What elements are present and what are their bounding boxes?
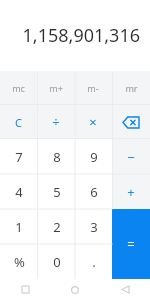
button[interactable]: mr	[112, 71, 150, 105]
button[interactable]: ÷	[37, 105, 74, 139]
button[interactable]: Back	[100, 279, 150, 300]
staticText: −	[127, 148, 135, 166]
staticText: 8	[53, 148, 61, 166]
button[interactable]: 9	[75, 139, 112, 174]
button[interactable]: Backspace	[112, 105, 150, 139]
staticText: .	[92, 253, 96, 271]
staticText: 0	[53, 253, 61, 271]
staticText: 4	[15, 183, 23, 201]
button[interactable]: 2	[38, 209, 75, 244]
button[interactable]: Equals	[112, 209, 150, 279]
staticText: ×	[89, 113, 97, 131]
button[interactable]: −	[112, 139, 150, 174]
button[interactable]: m+	[37, 71, 74, 105]
button[interactable]: 7	[0, 139, 38, 174]
button[interactable]: .	[75, 244, 112, 279]
staticText: +	[127, 183, 135, 201]
staticText: mr	[125, 82, 138, 94]
staticText: 5	[53, 183, 61, 201]
button[interactable]: 6	[75, 174, 112, 209]
button[interactable]: %	[0, 244, 38, 279]
button[interactable]: 3	[75, 209, 112, 244]
button[interactable]: Home	[50, 279, 100, 300]
staticText: 7	[15, 148, 23, 166]
staticText: 9	[90, 148, 98, 166]
staticText: 1	[15, 218, 23, 236]
staticText: 2	[53, 218, 61, 236]
staticText: 1,158,901,316	[22, 23, 140, 48]
staticText: ÷	[52, 113, 60, 131]
button[interactable]: 5	[38, 174, 75, 209]
staticText: 3	[90, 218, 98, 236]
button[interactable]: 4	[0, 174, 38, 209]
staticText: m+	[49, 82, 63, 94]
button[interactable]: 0	[38, 244, 75, 279]
button[interactable]: 1	[0, 209, 38, 244]
staticText: %	[14, 253, 25, 271]
staticText: m-	[87, 82, 99, 94]
button[interactable]: +	[112, 174, 150, 209]
staticText: mc	[12, 82, 25, 94]
button[interactable]: Recents	[0, 279, 50, 300]
button[interactable]: mc	[0, 71, 37, 105]
staticText: C	[15, 115, 22, 130]
button[interactable]: m-	[74, 71, 112, 105]
button[interactable]: ×	[74, 105, 112, 139]
button[interactable]: 8	[38, 139, 75, 174]
button[interactable]: C	[0, 105, 37, 139]
staticText: 6	[90, 183, 98, 201]
staticText: =	[127, 235, 135, 253]
